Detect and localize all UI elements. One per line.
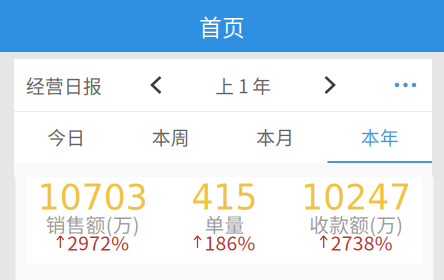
staticText: 本月	[256, 123, 294, 150]
staticText: 收款额(万)	[309, 210, 403, 238]
button[interactable]: 下一年	[307, 59, 352, 111]
button[interactable]: 更多	[384, 59, 426, 111]
staticText: 单量	[204, 210, 244, 238]
staticText: 今日	[47, 123, 85, 150]
button[interactable]: 本年	[327, 112, 432, 163]
staticText: 首页	[199, 10, 245, 42]
staticText: 10247	[301, 177, 411, 218]
button[interactable]: 本周	[118, 112, 223, 163]
staticText: 上 1 年	[215, 71, 271, 98]
staticText: 10703	[38, 177, 148, 218]
staticText: 本年	[361, 123, 399, 150]
button[interactable]: 上一年	[134, 59, 179, 111]
button[interactable]: 本月	[223, 112, 327, 163]
staticText: 经营日报	[26, 71, 102, 98]
staticText: 销售额(万)	[46, 210, 140, 238]
staticText: 415	[191, 177, 257, 218]
button[interactable]: 今日	[14, 112, 118, 163]
staticText: 本周	[152, 123, 190, 150]
staticText: 186%	[204, 228, 255, 256]
staticText: 2738%	[331, 228, 393, 256]
staticText: 2972%	[67, 228, 129, 256]
